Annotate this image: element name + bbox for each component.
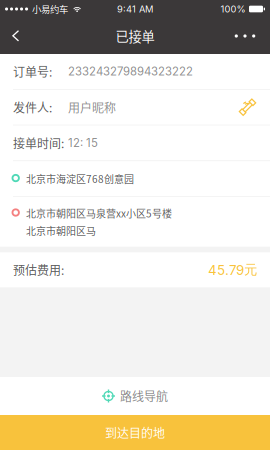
button[interactable]: 返回 [0, 18, 36, 54]
staticText: 订单号: [13, 63, 52, 80]
button[interactable]: 更多 [218, 18, 270, 54]
staticText: 路线导航 [120, 387, 168, 405]
staticText: 100% [220, 3, 245, 15]
staticText: 到达目的地 [105, 424, 165, 441]
button[interactable]: 拨打电话 [239, 99, 256, 116]
staticText: 用户昵称 [68, 98, 116, 116]
staticText: 12: 15 [68, 136, 98, 150]
button[interactable]: 路线导航 [0, 377, 270, 415]
staticText: 发件人: [13, 98, 52, 116]
staticText: 预估费用: [13, 261, 64, 278]
staticText: 已接单 [115, 26, 154, 46]
staticText: 北京市海淀区768创意园 [26, 171, 134, 186]
staticText: 233243279894323222 [68, 65, 193, 78]
staticText: 北京市朝阳区马泉营xx小区5号楼 [26, 206, 172, 220]
staticText: 小易约车 [32, 2, 68, 16]
staticText: 9:41 AM [117, 3, 153, 15]
button[interactable]: 到达目的地 [0, 415, 270, 450]
staticText: 接单时间: [13, 134, 64, 152]
staticText: 北京市朝阳区马 [26, 223, 96, 238]
staticText: 45.79元 [208, 261, 257, 278]
